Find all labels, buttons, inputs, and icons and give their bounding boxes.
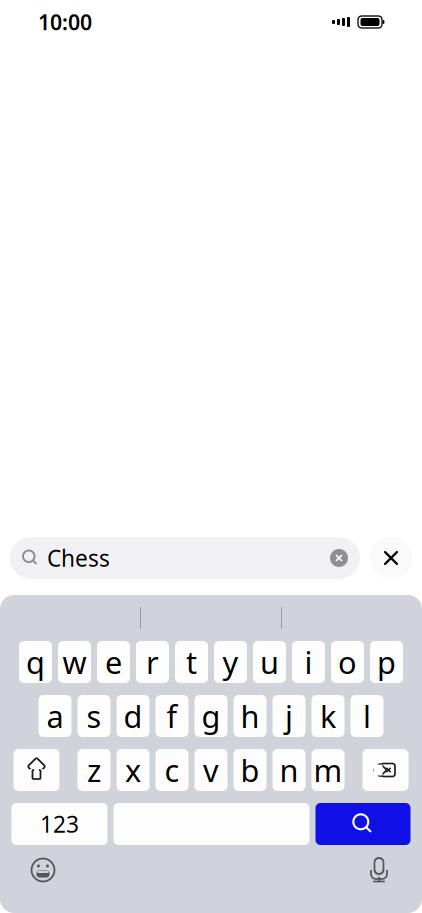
button[interactable]: s <box>77 695 110 737</box>
staticText: h <box>240 696 259 736</box>
button[interactable]: m <box>311 749 344 791</box>
staticText: d <box>123 696 142 736</box>
button[interactable]: Close search <box>370 537 412 579</box>
staticText: Chess <box>47 543 110 573</box>
button[interactable]: z <box>77 749 110 791</box>
button[interactable]: r <box>136 641 169 683</box>
button[interactable]: b <box>233 749 266 791</box>
button[interactable]: l <box>350 695 383 737</box>
staticText: i <box>304 642 312 682</box>
button[interactable]: Chess <box>10 537 360 579</box>
button[interactable]: Emoji <box>26 853 60 887</box>
staticText: v <box>203 750 219 790</box>
staticText: z <box>87 750 101 790</box>
staticText: a <box>46 696 63 736</box>
staticText: 123 <box>40 809 79 839</box>
staticText: n <box>279 750 298 790</box>
button[interactable]: Delete <box>362 749 408 791</box>
staticText: g <box>201 696 220 736</box>
button[interactable]: e <box>97 641 130 683</box>
button[interactable]: Shift <box>13 749 59 791</box>
button[interactable]: a <box>38 695 71 737</box>
button[interactable]: n <box>272 749 305 791</box>
staticText: j <box>285 696 293 736</box>
button[interactable]: Search <box>315 803 410 845</box>
staticText: 10:00 <box>38 8 92 36</box>
button[interactable]: p <box>370 641 403 683</box>
staticText: y <box>222 642 238 682</box>
button[interactable]: o <box>331 641 364 683</box>
button[interactable]: u <box>253 641 286 683</box>
staticText: b <box>240 750 259 790</box>
staticText: m <box>313 750 342 790</box>
staticText: r <box>146 642 159 682</box>
staticText: t <box>186 642 197 682</box>
staticText: x <box>125 750 141 790</box>
staticText: k <box>320 696 336 736</box>
button[interactable]: Dictation <box>362 853 396 887</box>
button[interactable]: x <box>116 749 149 791</box>
button[interactable]: 123 <box>11 803 107 845</box>
button[interactable]: v <box>194 749 227 791</box>
button[interactable]: g <box>194 695 227 737</box>
staticText: u <box>260 642 279 682</box>
button[interactable]: i <box>292 641 325 683</box>
staticText: e <box>105 642 122 682</box>
staticText: s <box>86 696 101 736</box>
button[interactable]: c <box>155 749 188 791</box>
button[interactable]: y <box>214 641 247 683</box>
button[interactable]: w <box>58 641 91 683</box>
staticText: o <box>338 642 357 682</box>
staticText: p <box>377 642 396 682</box>
button[interactable]: h <box>233 695 266 737</box>
button[interactable]: d <box>116 695 149 737</box>
button[interactable]: q <box>19 641 52 683</box>
button[interactable]: j <box>272 695 305 737</box>
button[interactable]: t <box>175 641 208 683</box>
staticText: f <box>166 696 177 736</box>
staticText: c <box>164 750 179 790</box>
button[interactable]: f <box>155 695 188 737</box>
staticText: w <box>62 642 86 682</box>
staticText: l <box>363 696 371 736</box>
staticText: q <box>26 642 45 682</box>
button[interactable]: k <box>311 695 344 737</box>
